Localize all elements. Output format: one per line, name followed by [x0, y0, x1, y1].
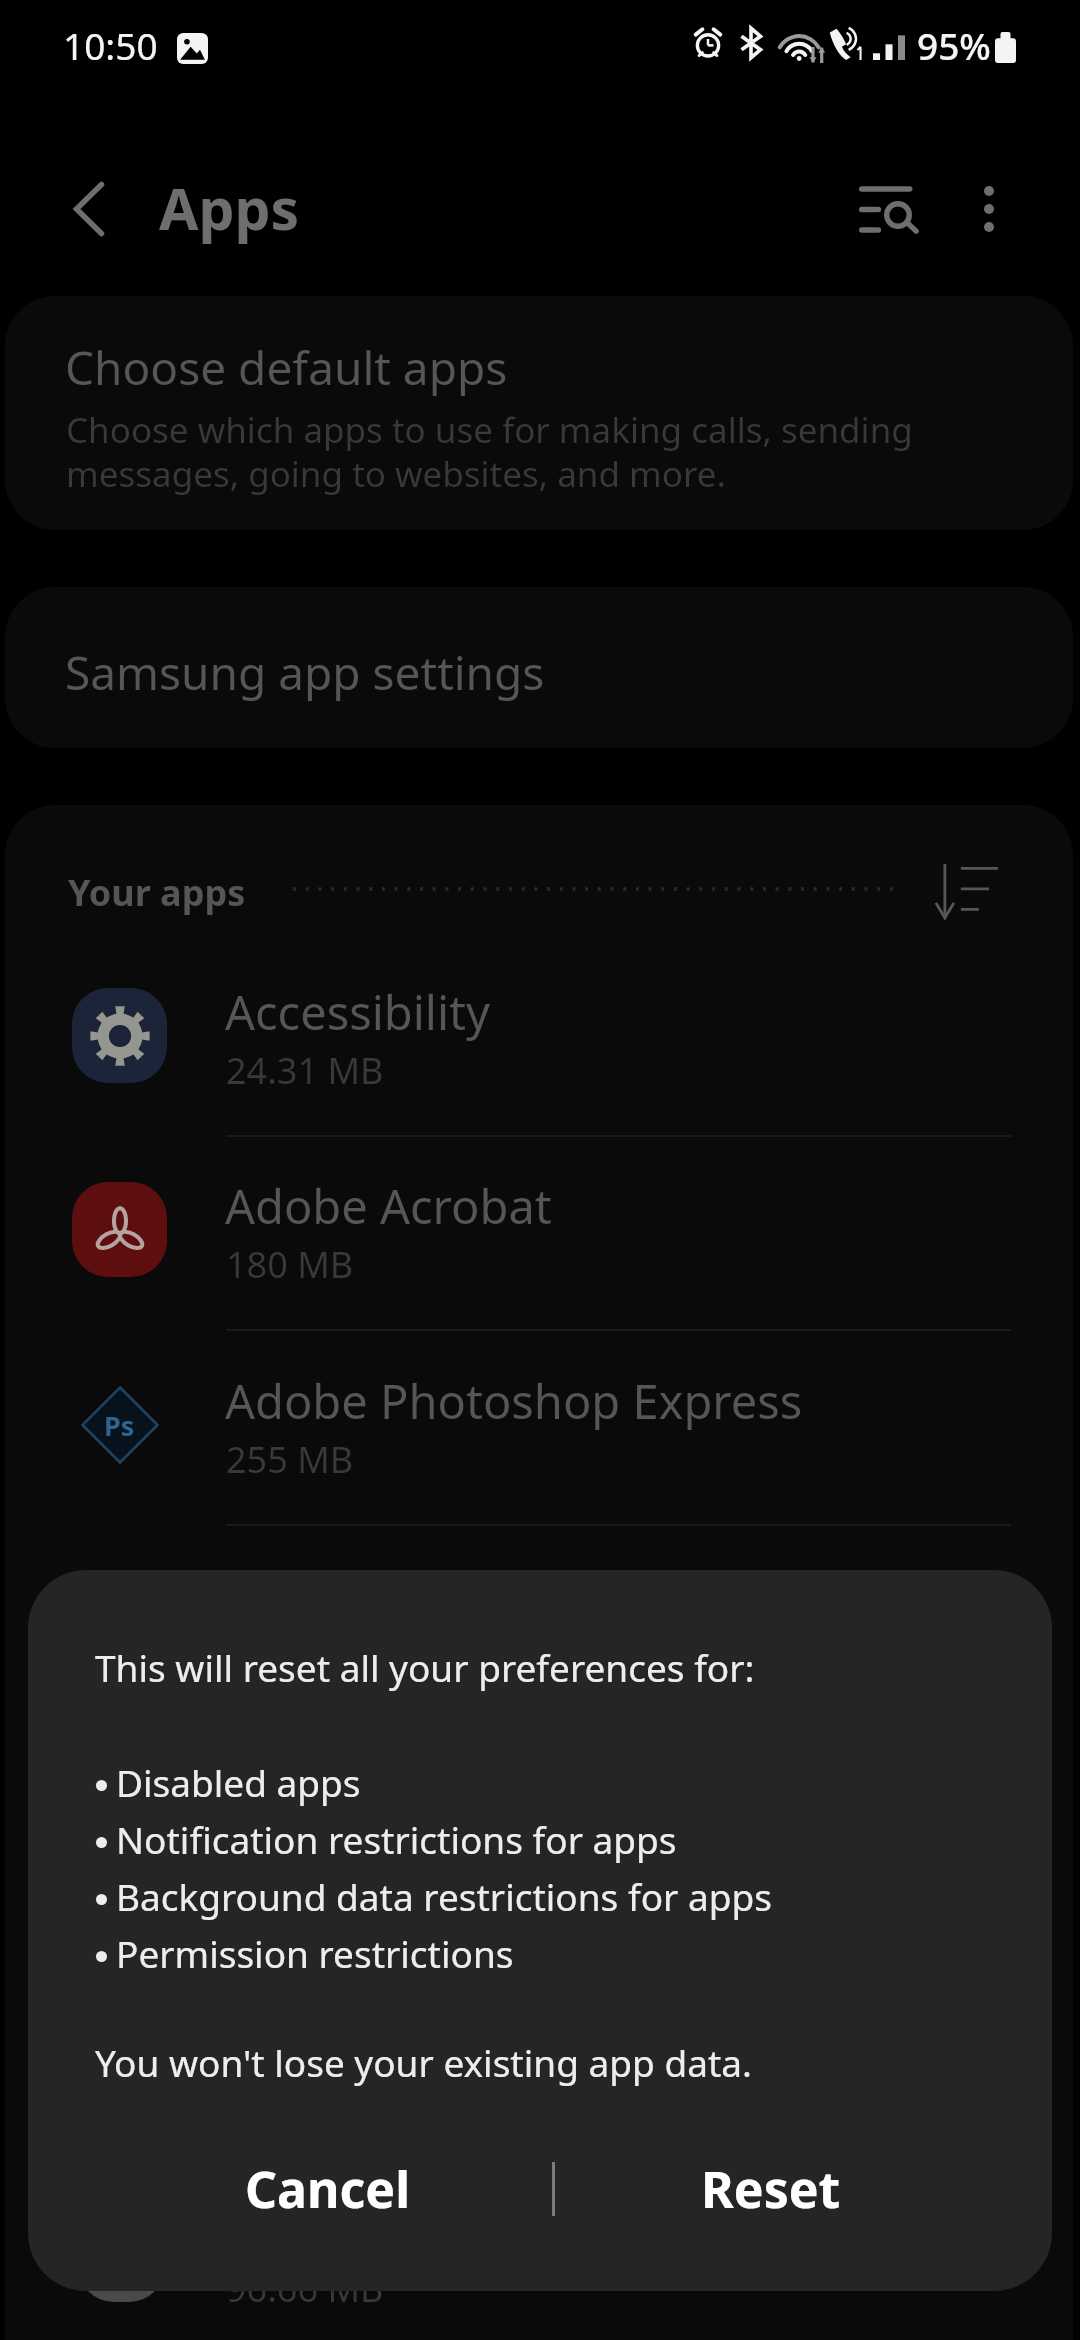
button[interactable]: Sort — [914, 844, 1018, 938]
button[interactable] — [5, 1905, 1073, 2102]
staticText: Reset — [701, 2155, 841, 2223]
button[interactable]: Back — [42, 163, 134, 255]
staticText: Notification restrictions for apps — [116, 1814, 677, 1864]
staticText: This will reset all your preferences for… — [95, 1642, 755, 1692]
button[interactable]: Samsung app settings — [5, 587, 1073, 748]
button[interactable] — [5, 1322, 1073, 1519]
staticText: Choose default apps — [65, 336, 508, 399]
staticText: Disabled apps — [116, 1757, 361, 1807]
staticText: You won't lose your existing app data. — [95, 2037, 752, 2087]
staticText: Ps — [104, 1407, 135, 1444]
button[interactable]: More options — [943, 163, 1035, 255]
staticText: 24.31 MB — [226, 1046, 384, 1095]
button[interactable]: Choose default apps — [5, 296, 1073, 530]
staticText: Android Auto — [225, 1563, 518, 1627]
staticText: 95% — [917, 20, 991, 70]
staticText: Adobe Acrobat — [225, 1174, 552, 1238]
staticText: 12.5 MB — [226, 1824, 363, 1873]
staticText: Accessibility — [225, 980, 491, 1044]
staticText: Permission restrictions — [116, 1928, 514, 1978]
button[interactable] — [5, 933, 1073, 1130]
button[interactable]: Search — [842, 162, 934, 254]
button[interactable] — [5, 1127, 1073, 1324]
staticText: 180 MB — [226, 1240, 354, 1289]
button[interactable] — [5, 1711, 1073, 1908]
staticText: Samsung app settings — [65, 641, 545, 704]
staticText: Assistant Menu — [225, 1758, 564, 1822]
staticText: Cancel — [245, 2155, 411, 2223]
button[interactable]: Cancel — [108, 2124, 548, 2254]
staticText: messages, going to websites, and more. — [66, 450, 726, 498]
button[interactable]: Reset — [551, 2124, 991, 2254]
staticText: Adobe Photoshop Express — [225, 1369, 803, 1433]
staticText: 10:50 — [63, 20, 158, 70]
staticText: Choose which apps to use for making call… — [66, 406, 913, 454]
staticText: Bixby Voice — [225, 1952, 474, 2016]
staticText: Your apps — [68, 868, 246, 917]
button[interactable] — [5, 1516, 1073, 1713]
staticText: Apps — [159, 169, 300, 247]
staticText: 255 MB — [226, 1435, 354, 1484]
staticText: 96.66 MB — [226, 2264, 384, 2313]
staticText: 96.66 MB — [226, 1629, 384, 1678]
staticText: 240 MB — [226, 2018, 354, 2067]
staticText: Background data restrictions for apps — [116, 1871, 772, 1921]
